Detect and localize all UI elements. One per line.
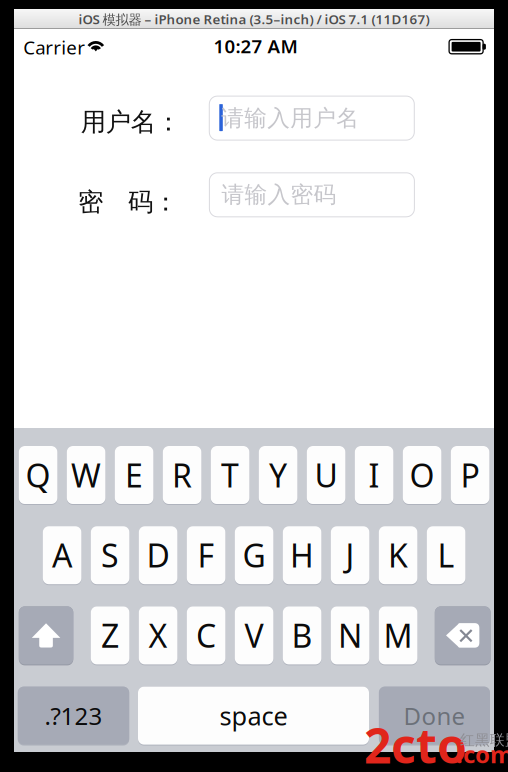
button[interactable]: E bbox=[115, 446, 153, 505]
button[interactable]: Done bbox=[379, 687, 490, 746]
staticText: N bbox=[338, 614, 362, 657]
button[interactable]: Q bbox=[19, 446, 57, 505]
button[interactable]: S bbox=[91, 526, 129, 585]
button[interactable]: P bbox=[451, 446, 489, 505]
staticText: L bbox=[438, 534, 455, 576]
button[interactable]: space bbox=[138, 687, 369, 746]
staticText: V bbox=[245, 614, 264, 657]
staticText: space bbox=[219, 699, 287, 732]
button[interactable]: M bbox=[379, 606, 417, 665]
staticText: P bbox=[461, 454, 480, 496]
staticText: 请输入用户名 bbox=[221, 104, 359, 132]
button[interactable]: 请输入用户名 bbox=[209, 96, 414, 140]
staticText: H bbox=[290, 534, 314, 576]
staticText: .com bbox=[456, 738, 508, 770]
staticText: 请输入密码 bbox=[221, 181, 336, 209]
button[interactable]: I bbox=[355, 446, 393, 505]
button[interactable]: B bbox=[283, 606, 321, 665]
staticText: S bbox=[101, 534, 119, 576]
staticText: J bbox=[346, 534, 355, 576]
button[interactable]: Delete bbox=[435, 606, 491, 665]
staticText: B bbox=[292, 614, 313, 657]
staticText: R bbox=[172, 454, 192, 496]
button[interactable]: J bbox=[331, 526, 369, 585]
staticText: 密 码： bbox=[78, 186, 178, 218]
staticText: T bbox=[221, 454, 239, 496]
staticText: 2cto bbox=[364, 713, 467, 772]
button[interactable]: G bbox=[235, 526, 273, 585]
staticText: Z bbox=[101, 614, 119, 657]
staticText: 10:27 AM bbox=[213, 34, 297, 58]
staticText: M bbox=[384, 614, 413, 657]
staticText: iOS 模拟器 – iPhone Retina (3.5–inch) / iOS… bbox=[78, 10, 429, 28]
staticText: Q bbox=[26, 454, 51, 496]
staticText: A bbox=[52, 534, 72, 576]
staticText: I bbox=[369, 454, 380, 496]
button[interactable]: .?123 bbox=[18, 687, 129, 746]
staticText: .?123 bbox=[44, 700, 102, 732]
staticText: O bbox=[410, 454, 435, 496]
button[interactable]: W bbox=[67, 446, 105, 505]
button[interactable]: Y bbox=[259, 446, 297, 505]
staticText: X bbox=[149, 614, 168, 657]
staticText: Carrier bbox=[23, 35, 85, 60]
button[interactable]: Shift bbox=[19, 606, 73, 665]
button[interactable]: R bbox=[163, 446, 201, 505]
button[interactable]: V bbox=[235, 606, 273, 665]
staticText: F bbox=[198, 534, 215, 576]
staticText: C bbox=[196, 614, 216, 657]
staticText: Y bbox=[269, 454, 287, 496]
staticText: K bbox=[388, 534, 408, 576]
button[interactable]: H bbox=[283, 526, 321, 585]
button[interactable]: X bbox=[139, 606, 177, 665]
button[interactable]: C bbox=[187, 606, 225, 665]
staticText: 用户名： bbox=[81, 107, 181, 138]
button[interactable]: L bbox=[427, 526, 465, 585]
button[interactable]: T bbox=[211, 446, 249, 505]
button[interactable]: 请输入密码 bbox=[209, 173, 414, 217]
staticText: D bbox=[147, 534, 170, 576]
button[interactable]: N bbox=[331, 606, 369, 665]
staticText: G bbox=[243, 534, 266, 576]
button[interactable]: Z bbox=[91, 606, 129, 665]
staticText: U bbox=[315, 454, 338, 496]
button[interactable]: O bbox=[403, 446, 441, 505]
button[interactable]: D bbox=[139, 526, 177, 585]
staticText: W bbox=[71, 454, 101, 496]
button[interactable]: F bbox=[187, 526, 225, 585]
button[interactable]: U bbox=[307, 446, 345, 505]
button[interactable]: K bbox=[379, 526, 417, 585]
staticText: 红黑联盟 bbox=[460, 731, 508, 749]
staticText: Done bbox=[403, 700, 465, 732]
staticText: E bbox=[125, 454, 143, 496]
button[interactable]: A bbox=[43, 526, 81, 585]
